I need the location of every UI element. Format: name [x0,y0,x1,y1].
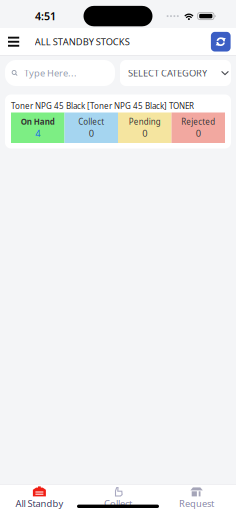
staticText: All Standby [15,497,63,510]
staticText: Collect [78,116,104,127]
staticText: SELECT CATEGORY [128,67,207,79]
staticText: 0 [196,127,201,139]
button[interactable]: Request [157,485,236,512]
staticText: Toner NPG 45 Black [Toner NPG 45 Black] … [11,101,194,111]
staticText: Request [179,497,214,510]
button[interactable]: SELECT CATEGORY [120,60,231,86]
staticText: 0 [142,127,147,139]
staticText: 4:51 [35,9,56,23]
button[interactable]: All Standby [0,485,79,512]
staticText: 4 [35,127,40,139]
button[interactable]: Toner NPG 45 Black [Toner NPG 45 Black] … [5,94,231,148]
button[interactable]: Menu [0,29,35,55]
button[interactable]: Type Here... [5,60,115,86]
staticText: ALL STANDBY STOCKS [35,35,130,48]
button[interactable]: Refresh [211,32,236,52]
staticText: Type Here... [24,67,77,79]
button[interactable]: Collect [79,485,157,512]
staticText: 0 [89,127,94,139]
staticText: Rejected [181,116,215,127]
staticText: Pending [129,116,161,127]
staticText: Collect [104,497,132,510]
staticText: On Hand [21,116,55,127]
